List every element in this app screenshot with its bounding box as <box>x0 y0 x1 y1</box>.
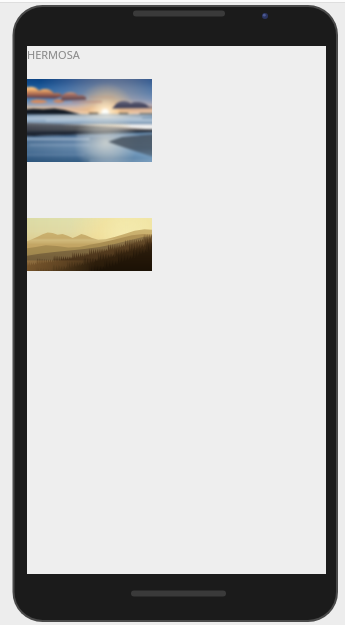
button[interactable]: Beach sunset photo <box>27 79 152 162</box>
button[interactable]: Mountain forest photo <box>27 218 152 271</box>
staticText: HERMOSA <box>27 47 80 62</box>
